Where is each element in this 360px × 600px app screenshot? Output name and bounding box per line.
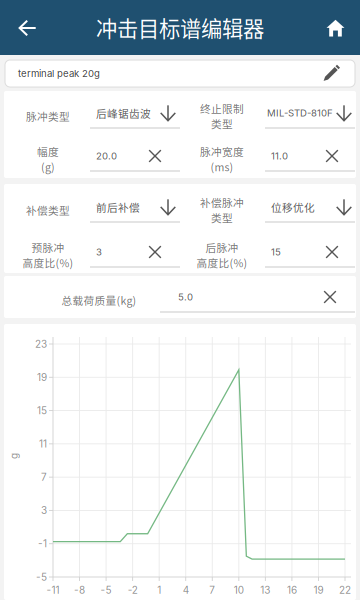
- staticText: 脉冲宽度: [200, 144, 244, 159]
- staticText: 3: [41, 504, 47, 516]
- staticText: 23: [35, 338, 47, 350]
- button[interactable]: 终止限制: [4, 91, 356, 178]
- staticText: (ms): [210, 159, 233, 174]
- staticText: 10: [234, 584, 244, 596]
- staticText: 幅度: [37, 144, 59, 159]
- staticText: 20.0: [96, 150, 117, 162]
- staticText: -11: [46, 584, 59, 596]
- button[interactable]: Home: [312, 5, 358, 51]
- staticText: 3: [96, 246, 102, 258]
- button[interactable]: 预脉冲: [4, 184, 356, 273]
- staticText: -1: [38, 538, 47, 550]
- staticText: 高度比(%): [22, 255, 73, 270]
- button[interactable]: 幅度: [4, 91, 356, 178]
- button[interactable]: 后脉冲: [4, 184, 356, 273]
- button[interactable]: Back: [4, 5, 50, 51]
- staticText: 位移优化: [271, 199, 315, 215]
- button[interactable]: 补偿类型: [4, 184, 356, 273]
- button[interactable]: 脉冲宽度: [4, 91, 356, 178]
- staticText: 15: [271, 246, 281, 258]
- staticText: 类型: [211, 210, 233, 225]
- staticText: 1: [157, 584, 161, 596]
- staticText: g: [11, 450, 17, 462]
- staticText: 总载荷质量(kg): [61, 292, 136, 308]
- staticText: 后峰锯齿波: [96, 105, 151, 121]
- staticText: 16: [287, 584, 297, 596]
- staticText: 19: [313, 584, 323, 596]
- staticText: -8: [74, 584, 85, 596]
- staticText: 脉冲类型: [26, 108, 70, 124]
- staticText: 7: [41, 471, 47, 483]
- staticText: 5.0: [178, 291, 193, 303]
- staticText: 11: [39, 438, 47, 450]
- staticText: 4: [183, 584, 189, 596]
- button[interactable]: 补偿脉冲: [4, 184, 356, 273]
- staticText: terminal peak 20g: [18, 68, 100, 79]
- staticText: 补偿类型: [26, 202, 70, 218]
- button[interactable]: terminal peak 20g: [5, 60, 355, 87]
- staticText: 冲击目标谱编辑器: [96, 12, 264, 43]
- button[interactable]: 总载荷质量(kg): [4, 276, 356, 318]
- staticText: -5: [36, 571, 47, 583]
- staticText: 前后补偿: [96, 199, 140, 215]
- staticText: MIL-STD-810F: [267, 107, 333, 119]
- staticText: 13: [260, 584, 270, 596]
- staticText: 终止限制: [200, 101, 244, 116]
- staticText: 预脉冲: [31, 240, 64, 255]
- staticText: 19: [37, 371, 47, 383]
- staticText: 15: [37, 404, 47, 417]
- staticText: -2: [128, 584, 138, 596]
- staticText: 7: [209, 584, 215, 596]
- button[interactable]: 脉冲类型: [4, 91, 356, 178]
- staticText: 类型: [211, 116, 233, 131]
- staticText: 高度比(%): [196, 255, 247, 270]
- staticText: 22: [339, 584, 351, 596]
- staticText: 11.0: [271, 150, 288, 162]
- staticText: 后脉冲: [205, 240, 238, 255]
- staticText: (g): [41, 159, 55, 174]
- staticText: 补偿脉冲: [200, 195, 244, 210]
- staticText: -5: [101, 584, 112, 596]
